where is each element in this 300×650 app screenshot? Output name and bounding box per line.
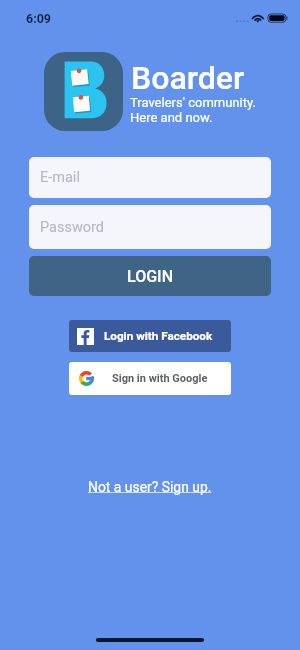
staticText: Password (40, 219, 105, 236)
button[interactable]: Not a user? Sign up. (82, 475, 218, 499)
button[interactable]: Google (69, 362, 231, 395)
staticText: Not a user? Sign up. (88, 479, 212, 495)
staticText: Login with Facebook (104, 329, 213, 343)
staticText: E-mail (40, 169, 80, 186)
other: Google (79, 371, 94, 386)
staticText: Travelers' community. Here and now. (130, 95, 256, 125)
button[interactable]: Password (29, 205, 271, 249)
staticText: 6:09 (26, 11, 52, 26)
staticText: LOGIN (127, 267, 173, 286)
button[interactable]: Facebook (69, 320, 231, 352)
other: Facebook (77, 328, 94, 345)
button[interactable]: E-mail (29, 157, 271, 198)
staticText: Boarder (131, 59, 245, 97)
button[interactable]: LOGIN (29, 256, 271, 296)
staticText: Sign in with Google (112, 372, 208, 385)
